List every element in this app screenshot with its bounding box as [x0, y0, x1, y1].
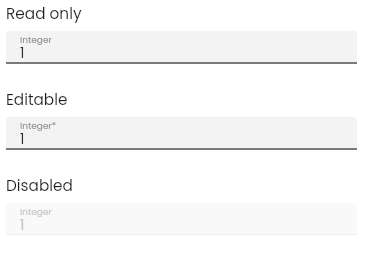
button[interactable]: Integer — [6, 31, 357, 64]
staticText: 1 — [20, 216, 25, 234]
staticText: Editable — [6, 89, 68, 110]
other: Number field states — [0, 0, 371, 255]
staticText: Integer — [20, 206, 52, 219]
staticText: Integer* — [20, 120, 57, 133]
button[interactable]: Integer* — [6, 117, 357, 150]
staticText: 1 — [20, 130, 25, 148]
staticText: Read only — [6, 3, 82, 24]
staticText: Disabled — [6, 175, 73, 196]
staticText: 1 — [20, 44, 25, 62]
button[interactable]: Integer — [6, 203, 357, 235]
staticText: Integer — [20, 34, 52, 47]
